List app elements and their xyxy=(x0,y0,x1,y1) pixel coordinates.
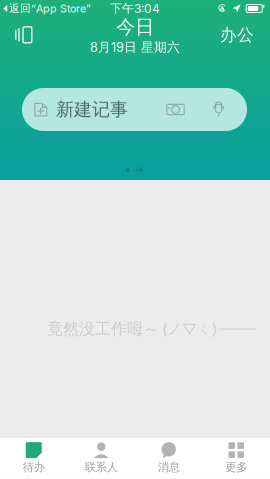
staticText: 消息 xyxy=(158,460,180,474)
staticText: (ノ▽ㄑ) xyxy=(162,320,217,338)
staticText: 待办 xyxy=(23,460,45,474)
button[interactable]: 办公 xyxy=(206,16,270,53)
staticText: 8月19日 星期六 xyxy=(90,39,180,55)
button[interactable]: 新建记事 xyxy=(22,88,247,131)
staticText: 办公 xyxy=(220,24,254,45)
staticText: 返回“App Store” xyxy=(9,2,91,15)
staticText: 更多 xyxy=(225,460,247,474)
button[interactable]: 消息 xyxy=(135,438,202,479)
button[interactable]: 更多 xyxy=(202,438,270,479)
staticText: 下午3:04 xyxy=(110,1,160,16)
staticText: 联系人 xyxy=(85,460,118,474)
button[interactable]: 待办 xyxy=(0,438,67,479)
staticText: 新建记事 xyxy=(56,98,128,121)
staticText: 今日 xyxy=(116,15,154,39)
button[interactable]: 记事本列表 xyxy=(0,18,47,52)
button[interactable]: 联系人 xyxy=(67,438,135,479)
staticText: 竟然没工作呣～ xyxy=(47,319,159,339)
